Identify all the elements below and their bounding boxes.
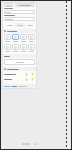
button[interactable] [2, 84, 37, 88]
button[interactable] [6, 23, 14, 27]
button[interactable]: Template option [12, 34, 19, 40]
button[interactable] [2, 54, 37, 58]
button[interactable]: List row [4, 77, 35, 82]
button[interactable] [2, 67, 37, 71]
button[interactable] [4, 17, 35, 21]
button[interactable]: Template option [20, 34, 27, 40]
button[interactable] [15, 3, 35, 7]
button[interactable]: Template option [28, 44, 35, 50]
button[interactable] [26, 23, 33, 27]
button[interactable]: Template option [28, 34, 35, 40]
button[interactable] [2, 29, 37, 33]
button[interactable]: Preview [4, 59, 35, 65]
button[interactable]: Template option [4, 44, 11, 50]
button[interactable] [4, 10, 35, 14]
button[interactable]: Template option [12, 44, 19, 50]
button[interactable] [15, 23, 25, 27]
button[interactable]: Template option [4, 34, 11, 40]
button[interactable]: Template option [20, 44, 27, 50]
button[interactable] [4, 3, 13, 7]
button[interactable]: List row [4, 72, 35, 77]
